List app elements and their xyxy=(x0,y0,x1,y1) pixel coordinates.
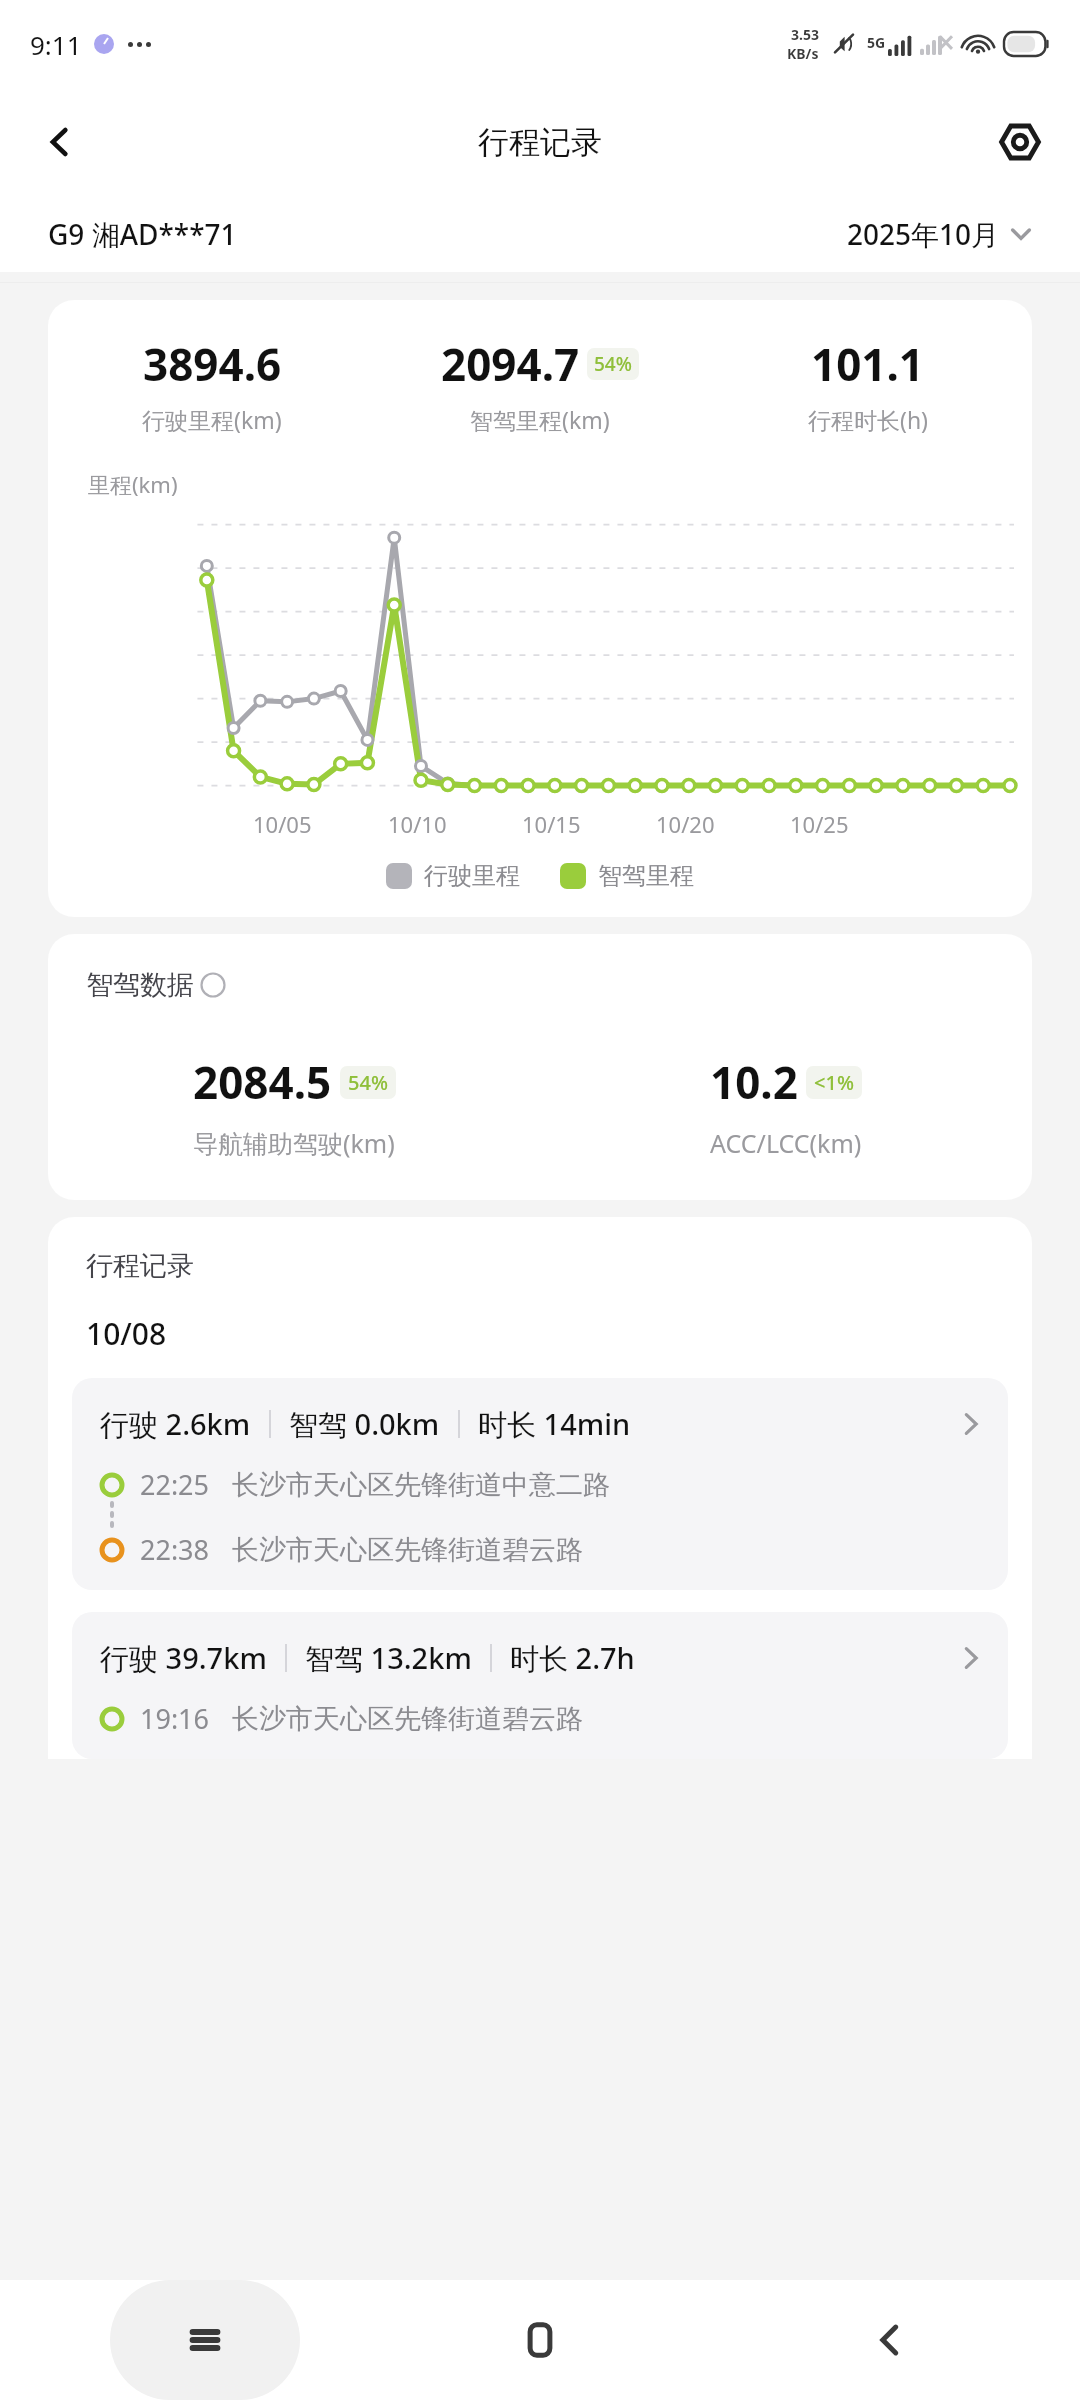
staticText: <1% xyxy=(814,1069,854,1096)
staticText: G9 湘AD***71 xyxy=(48,215,237,253)
staticText: 19:16 xyxy=(140,1700,210,1737)
staticText: 2094.7 xyxy=(441,334,580,394)
staticText: 时长 14min xyxy=(478,1404,631,1444)
staticText: 智驾 0.0km xyxy=(289,1404,440,1444)
button[interactable]: Recents xyxy=(110,2280,300,2400)
button[interactable]: 2025年10月 xyxy=(847,215,1032,253)
button[interactable]: 智驾里程 xyxy=(560,861,694,891)
staticText: 5G xyxy=(867,33,886,52)
staticText: 长沙市天心区先锋街道碧云路 xyxy=(232,1702,583,1736)
staticText: 行驶 2.6km xyxy=(100,1404,251,1444)
staticText: 10/10 xyxy=(388,809,447,839)
staticText: 行驶里程(km) xyxy=(142,404,282,435)
staticText: 10/25 xyxy=(790,809,849,839)
staticText: 54% xyxy=(594,351,632,377)
button[interactable]: 行驶 2.6km xyxy=(72,1378,1008,1590)
staticText: 101.1 xyxy=(811,334,925,394)
staticText: 行程时长(h) xyxy=(808,404,929,435)
staticText: 10/20 xyxy=(656,809,715,839)
staticText: 导航辅助驾驶(km) xyxy=(193,1126,395,1160)
staticText: 时长 2.7h xyxy=(510,1638,635,1678)
staticText: 行程记录 xyxy=(478,123,602,162)
staticText: 智驾里程(km) xyxy=(470,404,610,435)
staticText: 长沙市天心区先锋街道碧云路 xyxy=(232,1533,583,1567)
staticText: 智驾里程 xyxy=(598,861,694,891)
staticText: 22:25 xyxy=(140,1466,210,1503)
staticText: 9:11 xyxy=(30,27,82,62)
staticText: 10/15 xyxy=(522,809,581,839)
button[interactable]: Back xyxy=(830,2280,950,2400)
staticText: 里程(km) xyxy=(88,469,178,499)
staticText: ACC/LCC(km) xyxy=(710,1126,862,1160)
staticText: 2025年10月 xyxy=(847,215,1000,253)
staticText: 3.53 xyxy=(791,25,819,44)
staticText: 10/08 xyxy=(86,1313,167,1354)
staticText: 行驶里程 xyxy=(424,861,520,891)
staticText: 长沙市天心区先锋街道中意二路 xyxy=(232,1468,610,1502)
staticText: 10.2 xyxy=(710,1052,798,1112)
staticText: 22:38 xyxy=(140,1531,210,1568)
button[interactable]: 智驾数据 xyxy=(86,968,226,1002)
staticText: 54% xyxy=(348,1069,388,1096)
staticText: 智驾数据 xyxy=(86,968,194,1002)
staticText: 3894.6 xyxy=(143,334,282,394)
button[interactable]: Settings xyxy=(984,106,1056,178)
button[interactable]: 行驶里程 xyxy=(386,861,520,891)
staticText: 智驾 13.2km xyxy=(305,1638,472,1678)
staticText: 2084.5 xyxy=(193,1052,332,1112)
staticText: 行驶 39.7km xyxy=(100,1638,267,1678)
staticText: KB/s xyxy=(787,44,819,63)
button[interactable]: 行驶 39.7km xyxy=(72,1612,1008,1759)
button[interactable]: Home xyxy=(480,2280,600,2400)
button[interactable]: Back xyxy=(24,106,96,178)
staticText: 10/05 xyxy=(253,809,312,839)
staticText: 行程记录 xyxy=(86,1249,194,1283)
